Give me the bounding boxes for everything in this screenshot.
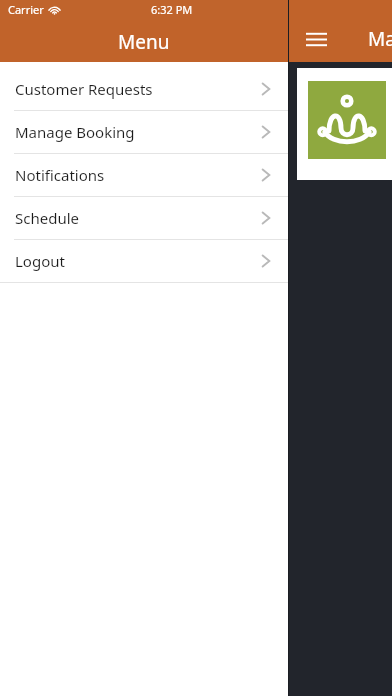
staticText: Schedule: [15, 208, 79, 228]
button[interactable]: Notifications: [0, 154, 288, 196]
staticText: Logout: [15, 251, 65, 271]
button[interactable]: Schedule: [0, 197, 288, 239]
staticText: Manage Booking: [15, 122, 135, 142]
staticText: 6:32 PM: [151, 2, 193, 17]
staticText: Notifications: [15, 165, 105, 185]
staticText: Menu: [118, 29, 170, 55]
button[interactable]: Manage Booking: [0, 111, 288, 153]
button[interactable]: Customer Requests: [0, 68, 288, 110]
staticText: Customer Requests: [15, 79, 153, 99]
staticText: Ma: [368, 26, 392, 52]
button[interactable]: Logout: [0, 240, 288, 282]
button[interactable]: Open menu: [299, 22, 333, 56]
staticText: Carrier: [8, 2, 44, 17]
